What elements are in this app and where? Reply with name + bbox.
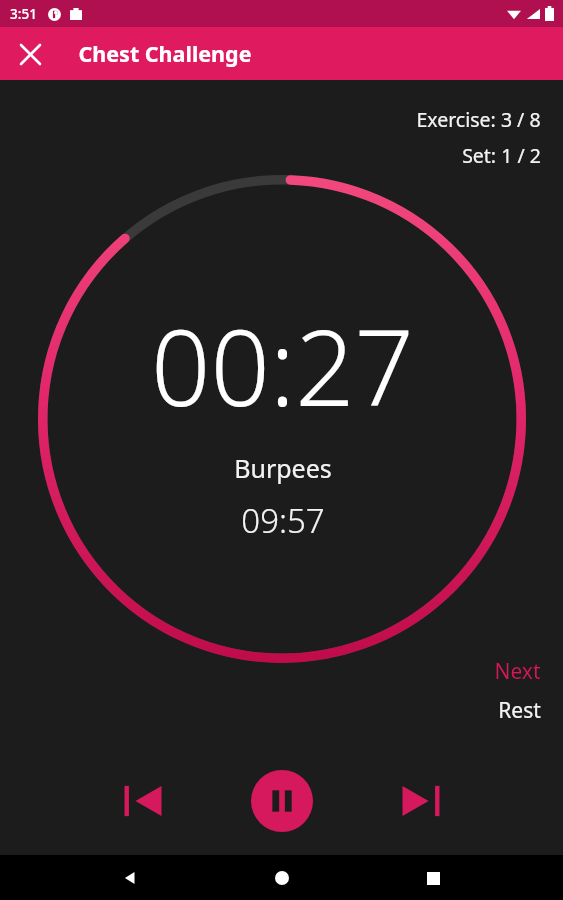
staticText: Rest <box>498 696 541 725</box>
staticText: Next <box>494 657 541 686</box>
staticText: Exercise: 3 / 8 <box>416 106 541 133</box>
button[interactable]: Recents <box>411 856 455 900</box>
staticText: Set: 1 / 2 <box>462 142 541 169</box>
button[interactable]: Next exercise <box>385 765 457 837</box>
staticText: 3:51 <box>10 5 37 23</box>
staticText: Burpees <box>234 451 332 485</box>
button[interactable]: Back <box>108 856 152 900</box>
button[interactable]: Home <box>260 856 304 900</box>
staticText: 09:57 <box>241 498 325 543</box>
button[interactable]: Close <box>8 32 52 76</box>
button[interactable]: Pause <box>251 770 313 832</box>
button[interactable]: Next <box>494 657 541 725</box>
button[interactable]: Previous <box>107 765 179 837</box>
staticText: 00:27 <box>151 295 414 437</box>
staticText: Chest Challenge <box>78 39 252 68</box>
